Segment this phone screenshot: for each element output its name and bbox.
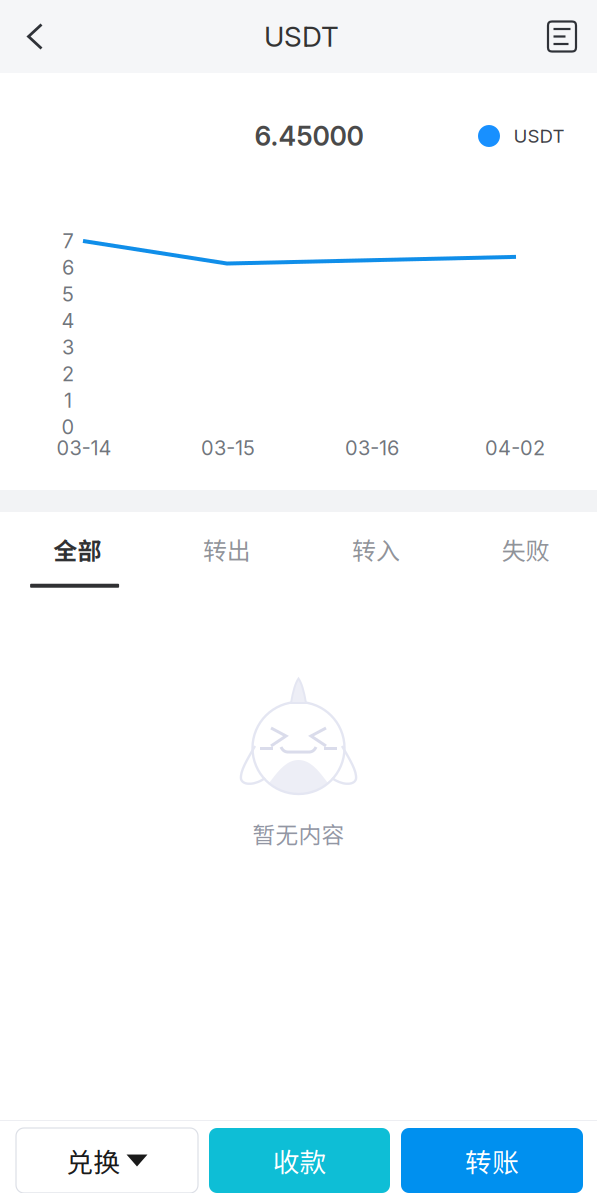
staticText: 1 bbox=[64, 388, 72, 412]
staticText: USDT bbox=[264, 20, 339, 53]
staticText: 5 bbox=[62, 282, 74, 306]
button[interactable]: 转出 bbox=[152, 512, 301, 612]
staticText: 04-02 bbox=[485, 436, 545, 460]
staticText: 收款 bbox=[272, 1141, 326, 1180]
button[interactable]: Back bbox=[0, 0, 70, 72]
staticText: USDT bbox=[513, 125, 564, 147]
staticText: 7 bbox=[62, 229, 73, 253]
staticText: 转出 bbox=[203, 532, 251, 567]
staticText: 03-14 bbox=[56, 436, 111, 460]
staticText: 转账 bbox=[465, 1141, 519, 1180]
staticText: 4 bbox=[61, 309, 74, 333]
staticText: 03-16 bbox=[345, 436, 399, 460]
button[interactable]: 全部 bbox=[3, 512, 152, 612]
staticText: 暂无内容 bbox=[252, 817, 344, 850]
staticText: 失败 bbox=[501, 532, 549, 567]
staticText: 03-15 bbox=[201, 436, 255, 460]
button[interactable]: 失败 bbox=[451, 512, 597, 612]
staticText: 0 bbox=[61, 415, 74, 439]
button[interactable]: 转账 bbox=[401, 1128, 583, 1193]
button[interactable]: Transaction records bbox=[527, 0, 597, 72]
staticText: 兑换 bbox=[66, 1141, 120, 1180]
staticText: 2 bbox=[62, 362, 74, 386]
staticText: 全部 bbox=[54, 532, 102, 567]
staticText: 6.45000 bbox=[254, 120, 363, 152]
button[interactable]: 收款 bbox=[209, 1128, 390, 1193]
button[interactable]: 兑换 bbox=[16, 1128, 198, 1193]
staticText: 转入 bbox=[352, 532, 400, 567]
staticText: 3 bbox=[62, 335, 74, 359]
staticText: 6 bbox=[62, 255, 74, 280]
button[interactable]: 转入 bbox=[301, 512, 451, 612]
